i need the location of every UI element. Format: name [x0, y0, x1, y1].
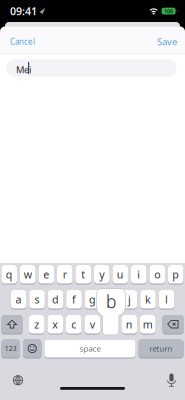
button[interactable]: y [94, 265, 109, 284]
staticText: d [52, 292, 59, 306]
staticText: j [128, 292, 131, 306]
button[interactable]: e [38, 265, 54, 284]
button[interactable]: Dictation [167, 373, 176, 387]
button[interactable]: Name [6, 59, 176, 76]
staticText: Mei [16, 63, 31, 76]
button[interactable]: i [131, 265, 146, 284]
staticText: v [90, 317, 95, 331]
button[interactable]: q [1, 265, 17, 284]
button[interactable]: k [140, 290, 156, 309]
button[interactable]: p [168, 265, 183, 284]
button[interactable]: Save [157, 35, 177, 48]
staticText: Save [157, 35, 177, 48]
staticText: k [145, 292, 151, 306]
button[interactable]: return [138, 339, 183, 358]
staticText: a [15, 292, 21, 306]
button[interactable]: z [29, 315, 44, 334]
staticText: r [63, 267, 67, 281]
button[interactable]: t [75, 265, 91, 284]
button[interactable]: v [84, 315, 100, 334]
staticText: p [172, 267, 179, 281]
staticText: return [149, 343, 172, 354]
staticText: e [43, 267, 49, 281]
staticText: 100 [164, 7, 173, 15]
staticText: q [6, 267, 13, 281]
staticText: c [71, 317, 76, 331]
button[interactable]: o [149, 265, 165, 284]
staticText: l [165, 292, 168, 306]
button[interactable]: u [112, 265, 128, 284]
button[interactable]: Shift [1, 315, 22, 334]
staticText: o [154, 267, 160, 281]
staticText: y [99, 267, 104, 281]
staticText: 09:41 [10, 4, 37, 18]
button[interactable]: f [66, 290, 82, 309]
button[interactable]: m [140, 315, 155, 334]
button[interactable]: l [159, 290, 174, 309]
button[interactable]: Cancel [10, 36, 35, 47]
button[interactable]: c [66, 315, 81, 334]
button[interactable]: r [57, 265, 72, 284]
staticText: b [106, 290, 116, 313]
button[interactable]: Emoji [23, 339, 41, 358]
staticText: n [126, 317, 133, 331]
staticText: f [72, 292, 76, 306]
button[interactable]: Delete [162, 315, 183, 334]
staticText: s [34, 292, 39, 306]
staticText: i [137, 267, 140, 281]
staticText: g [89, 292, 96, 306]
button[interactable]: d [48, 290, 63, 309]
button[interactable]: w [20, 265, 35, 284]
button[interactable]: a [11, 290, 26, 309]
staticText: u [117, 267, 124, 281]
button[interactable]: g [85, 290, 100, 309]
staticText: t [81, 267, 85, 281]
staticText: Cancel [10, 36, 35, 47]
staticText: 123 [5, 344, 17, 353]
staticText: m [143, 317, 153, 331]
button[interactable]: Next keyboard [13, 375, 23, 385]
staticText: space [79, 343, 100, 354]
staticText: h [107, 292, 114, 306]
button[interactable]: s [29, 290, 45, 309]
staticText: w [24, 267, 32, 281]
staticText: x [52, 317, 58, 331]
button[interactable]: x [47, 315, 63, 334]
button[interactable]: h [103, 290, 119, 309]
staticText: z [34, 317, 39, 331]
button[interactable]: 123 [1, 339, 20, 358]
button[interactable]: j [122, 290, 137, 309]
button[interactable]: space [44, 339, 135, 358]
button[interactable]: n [121, 315, 137, 334]
